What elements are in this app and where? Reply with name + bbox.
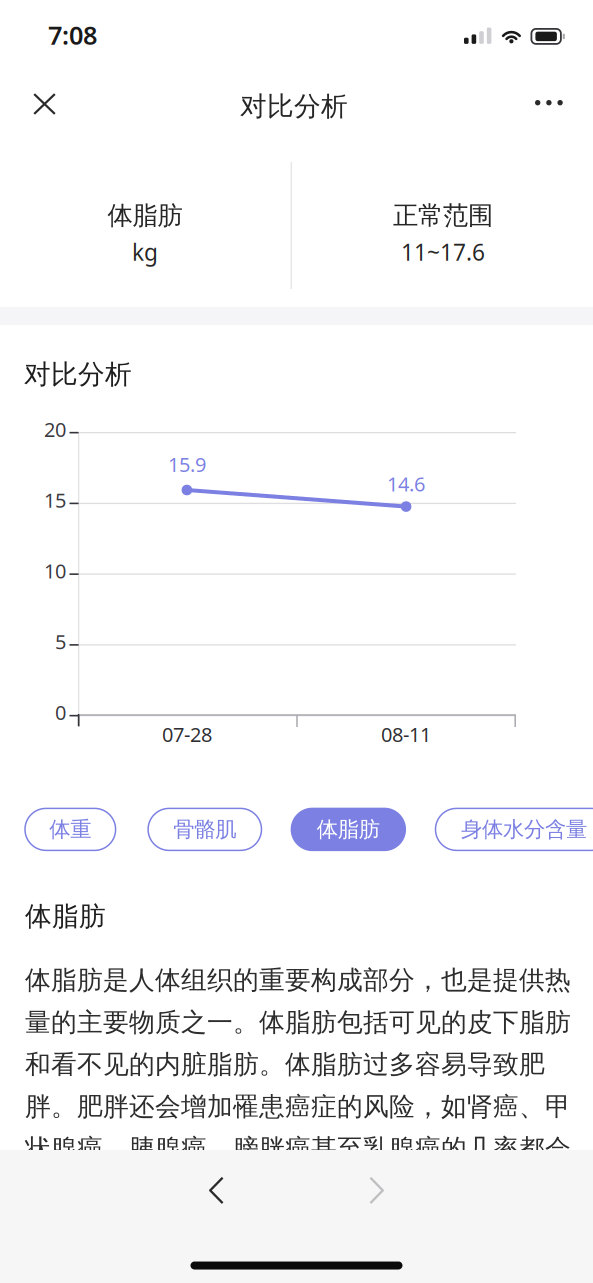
staticText: 11~17.6 xyxy=(401,237,485,267)
staticText: 骨骼肌 xyxy=(173,816,236,842)
button[interactable]: 体重 xyxy=(25,808,116,850)
staticText: 体脂肪 xyxy=(107,200,182,231)
staticText: 对比分析 xyxy=(24,358,132,391)
button[interactable]: 体脂肪 xyxy=(291,808,405,850)
button[interactable]: 后退 xyxy=(172,1158,261,1222)
staticText: 14.6 xyxy=(387,471,425,497)
staticText: 对比分析 xyxy=(240,90,348,123)
staticText: 20 xyxy=(44,416,66,443)
staticText: 0 xyxy=(55,699,66,726)
button[interactable]: 身体水分含量 xyxy=(435,808,593,850)
button[interactable]: 骨骼肌 xyxy=(148,808,261,850)
staticText: kg xyxy=(132,237,158,267)
staticText: 08-11 xyxy=(381,721,431,748)
button[interactable]: 更多 xyxy=(517,76,581,129)
staticText: 07-28 xyxy=(162,721,212,748)
staticText: 5 xyxy=(55,628,66,655)
staticText: 体脂肪 xyxy=(317,816,380,842)
staticText: 正常范围 xyxy=(393,200,493,231)
button[interactable]: 关闭 xyxy=(15,76,74,132)
staticText: 身体水分含量 xyxy=(461,816,587,842)
staticText: 体脂肪 xyxy=(25,900,106,933)
staticText: 体重 xyxy=(49,816,91,842)
staticText: 10 xyxy=(44,557,66,584)
staticText: 7:08 xyxy=(48,18,97,52)
button[interactable]: 前进 xyxy=(332,1158,421,1222)
staticText: 15.9 xyxy=(168,451,206,478)
staticText: 体脂肪是人体组织的重要构成部分，也是提供热量的主要物质之一。体脂肪包括可见的皮下… xyxy=(25,964,571,1165)
staticText: 15 xyxy=(44,487,66,513)
